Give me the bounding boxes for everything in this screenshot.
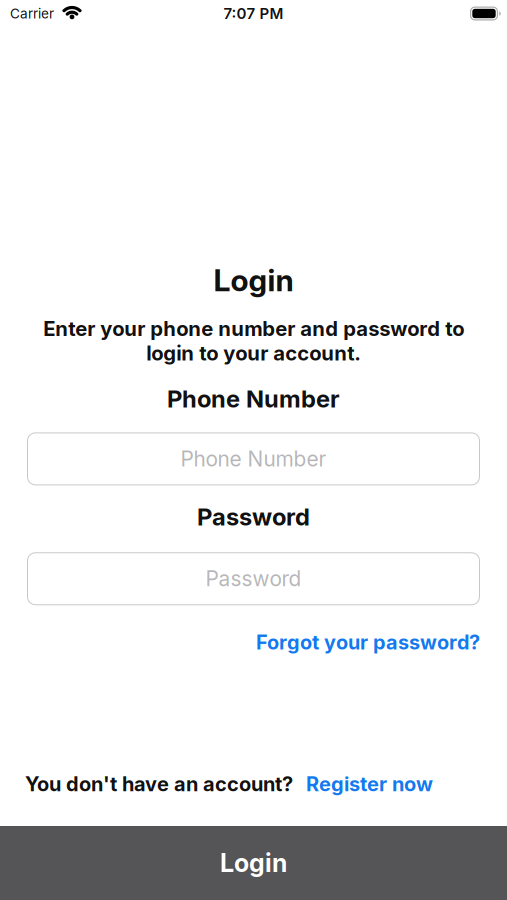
staticText: Password	[205, 566, 301, 591]
button[interactable]: Login	[0, 826, 507, 900]
staticText: Forgot your password?	[256, 630, 480, 654]
staticText: Register now	[306, 772, 433, 796]
button[interactable]: Password	[27, 552, 480, 605]
staticText: Enter your phone number and password to …	[43, 316, 464, 365]
button[interactable]: Register now	[306, 772, 433, 796]
staticText: Carrier	[10, 5, 54, 22]
staticText: 7:07 PM	[223, 4, 283, 23]
staticText: Password	[197, 502, 310, 531]
staticText: Login	[220, 848, 287, 878]
staticText: Phone Number	[180, 446, 326, 471]
button[interactable]: Forgot your password?	[256, 630, 480, 654]
button[interactable]: Phone Number	[27, 432, 480, 485]
staticText: Phone Number	[167, 384, 340, 413]
staticText: You don't have an account?	[25, 772, 293, 796]
staticText: Login	[213, 262, 293, 298]
